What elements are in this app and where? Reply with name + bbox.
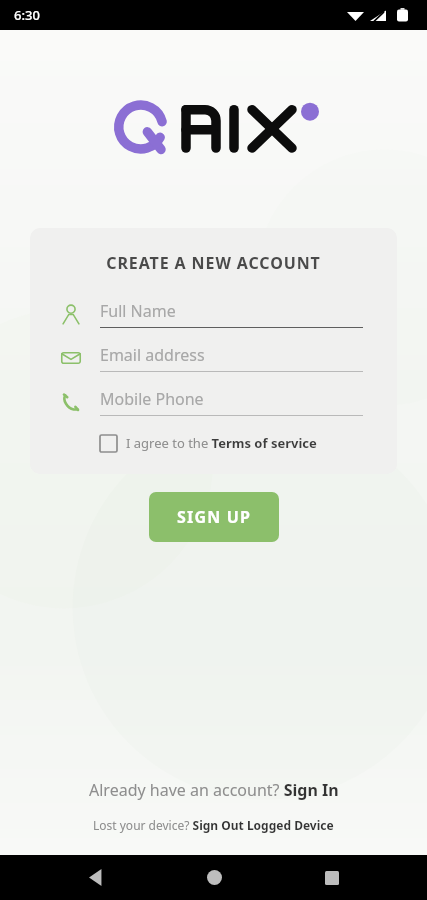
button[interactable]: I agree to the Terms of service [100,434,367,452]
staticText: 6:30 [14,6,40,24]
staticText: SIGN UP [177,506,252,528]
button[interactable]: Home [191,855,237,900]
button[interactable]: Already have an account? Sign In [81,777,347,803]
button[interactable]: Mobile Phone [58,388,363,416]
staticText: Full Name [100,300,176,322]
staticText: Already have an account? Sign In [89,779,339,801]
staticText: CREATE A NEW ACCOUNT [30,252,397,274]
staticText: I agree to the Terms of service [126,434,317,452]
staticText: Email address [100,344,205,366]
staticText: Mobile Phone [100,388,204,410]
button[interactable]: Back [72,855,118,900]
button[interactable]: Full Name [58,300,363,328]
button[interactable]: Lost your device? Sign Out Logged Device [85,815,342,835]
staticText: Lost your device? Sign Out Logged Device [93,817,334,833]
button[interactable]: SIGN UP [149,492,279,542]
button[interactable]: Recent apps [309,855,355,900]
button[interactable]: Email address [58,344,363,372]
